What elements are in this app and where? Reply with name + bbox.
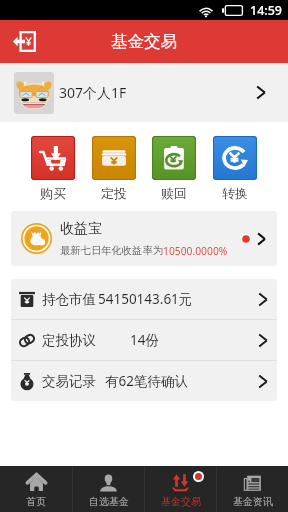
staticText: 14:59: [250, 2, 283, 19]
staticText: 定投: [101, 185, 127, 201]
staticText: 基金交易: [161, 495, 201, 508]
staticText: 首页: [26, 495, 46, 508]
button[interactable]: 交易记录: [11, 361, 277, 401]
staticText: 购买: [40, 185, 66, 201]
button[interactable]: 赎回: [152, 136, 196, 201]
staticText: 基金资讯: [233, 495, 273, 508]
staticText: 有62笔待确认: [105, 372, 188, 390]
button[interactable]: 307个人1F: [0, 63, 288, 122]
staticText: 自选基金: [89, 495, 129, 508]
staticText: 14份: [130, 331, 159, 349]
staticText: 基金交易: [111, 31, 177, 52]
button[interactable]: 购买: [31, 136, 75, 201]
staticText: 定投协议: [42, 332, 96, 349]
button[interactable]: 基金资讯: [217, 466, 288, 512]
button[interactable]: 定投: [92, 136, 136, 201]
staticText: 收益宝: [60, 220, 102, 238]
staticText: 最新七日年化收益率为: [60, 244, 163, 257]
button[interactable]: 定投协议: [11, 320, 277, 360]
staticText: 转换: [222, 185, 248, 201]
button[interactable]: Back: [13, 31, 36, 52]
staticText: 54150143.61元: [98, 290, 193, 308]
staticText: 307个人1F: [59, 83, 127, 102]
staticText: 10500.0000%: [163, 244, 228, 258]
button[interactable]: 自选基金: [73, 466, 144, 512]
button[interactable]: 持仓市值: [11, 279, 277, 319]
staticText: 赎回: [161, 185, 187, 201]
button[interactable]: 基金交易: [145, 466, 216, 512]
staticText: 交易记录: [42, 373, 96, 390]
staticText: 持仓市值: [42, 291, 96, 308]
button[interactable]: 收益宝: [11, 211, 277, 266]
button[interactable]: 转换: [213, 136, 257, 201]
button[interactable]: 首页: [0, 466, 72, 512]
